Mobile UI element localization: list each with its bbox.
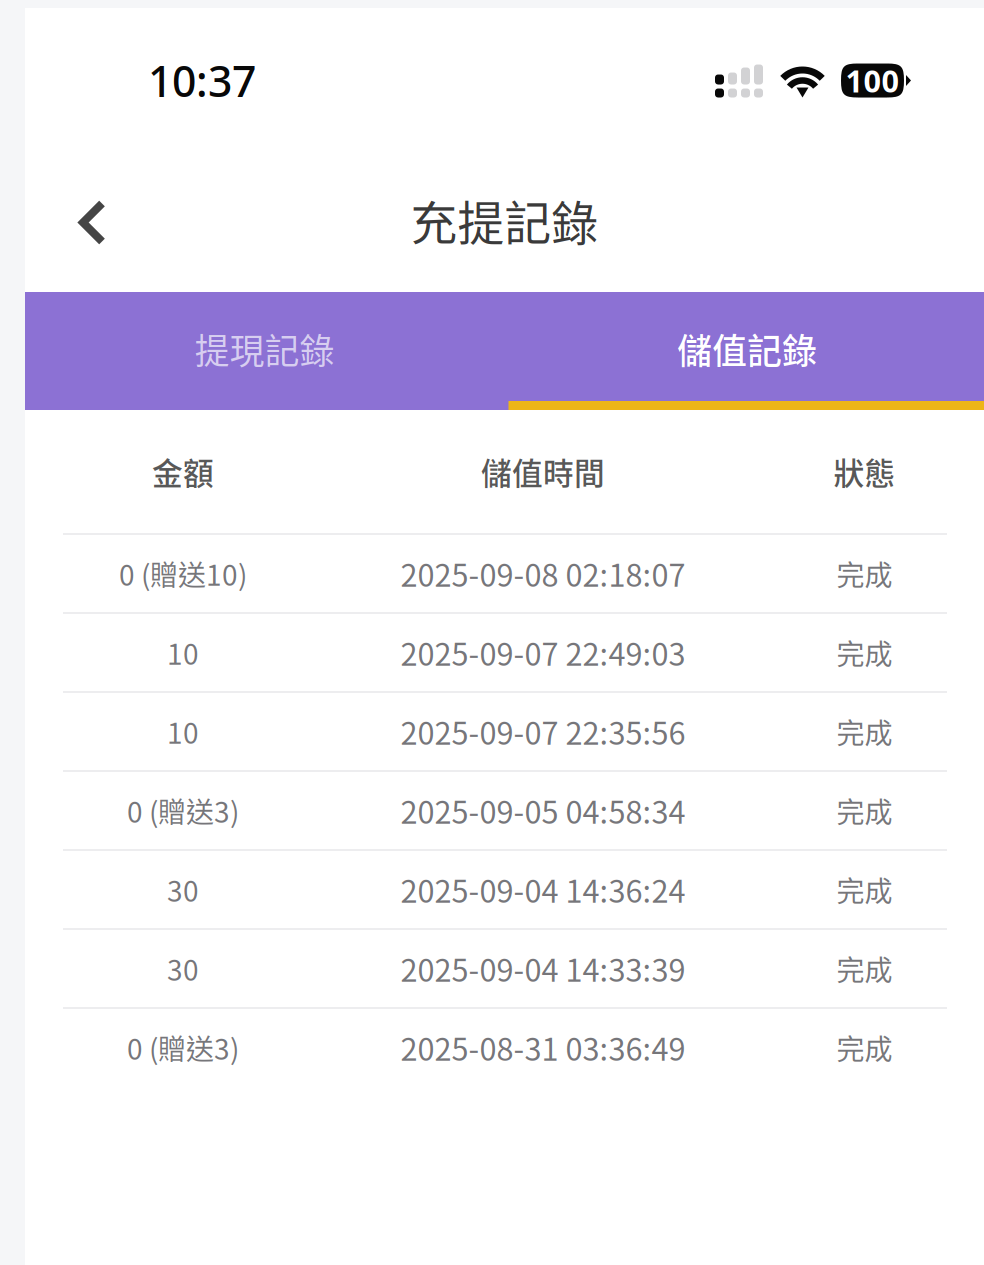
staticText: 10:37 (148, 52, 256, 109)
staticText: 完成 (836, 948, 892, 989)
staticText: 30 (167, 869, 199, 910)
staticText: 10 (167, 632, 199, 673)
staticText: 10 (167, 711, 199, 752)
staticText: 0 (贈送10) (119, 553, 247, 594)
staticText: 2025-09-04 14:36:24 (400, 867, 685, 912)
staticText: 30 (167, 948, 199, 989)
button[interactable]: 提現記錄 (25, 292, 504, 410)
staticText: 2025-09-04 14:33:39 (400, 946, 685, 991)
staticText: 0 (贈送3) (127, 790, 239, 831)
staticText: 完成 (836, 632, 892, 673)
staticText: 儲值時間 (481, 449, 605, 494)
button[interactable]: Back (25, 173, 150, 271)
button[interactable]: 儲值記錄 (504, 292, 984, 410)
staticText: 狀態 (833, 449, 895, 494)
staticText: 0 (贈送3) (127, 1027, 239, 1068)
staticText: 完成 (836, 711, 892, 752)
staticText: 金額 (152, 449, 214, 494)
staticText: 2025-09-05 04:58:34 (400, 788, 685, 833)
staticText: 2025-09-08 02:18:07 (400, 551, 685, 596)
staticText: 完成 (836, 553, 892, 594)
staticText: 提現記錄 (195, 324, 335, 374)
staticText: 完成 (836, 1027, 892, 1068)
staticText: 2025-09-07 22:49:03 (400, 630, 685, 675)
staticText: 100 (845, 60, 899, 101)
staticText: 充提記錄 (410, 186, 598, 254)
staticText: 儲值記錄 (677, 324, 817, 374)
staticText: 2025-09-07 22:35:56 (400, 709, 685, 754)
staticText: 完成 (836, 869, 892, 910)
staticText: 完成 (836, 790, 892, 831)
staticText: 2025-08-31 03:36:49 (400, 1025, 685, 1070)
